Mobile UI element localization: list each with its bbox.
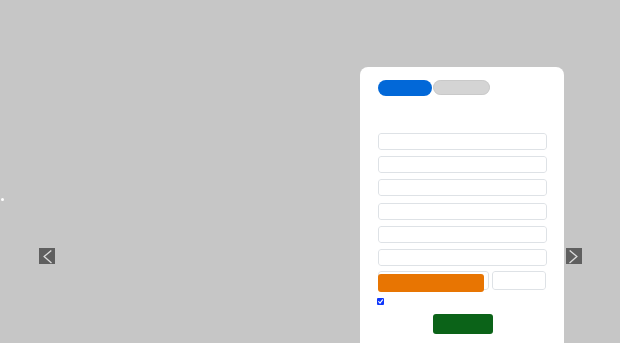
button[interactable]: Submit — [433, 314, 493, 334]
button[interactable]: Text field — [378, 133, 547, 150]
button[interactable]: Code field — [492, 271, 546, 290]
button[interactable]: Remember me, checked — [377, 298, 384, 305]
button[interactable]: Text field — [378, 156, 547, 173]
button[interactable]: Text field — [378, 249, 547, 266]
button[interactable]: Captcha field — [378, 271, 489, 290]
button[interactable]: Register tab — [433, 80, 490, 95]
button[interactable]: Text field — [378, 179, 547, 196]
button[interactable]: Previous — [39, 248, 55, 264]
button[interactable]: Text field — [378, 226, 547, 243]
button[interactable]: Next — [566, 248, 582, 264]
button[interactable]: Text field — [378, 203, 547, 220]
button[interactable]: Sign in tab, selected — [378, 80, 432, 96]
